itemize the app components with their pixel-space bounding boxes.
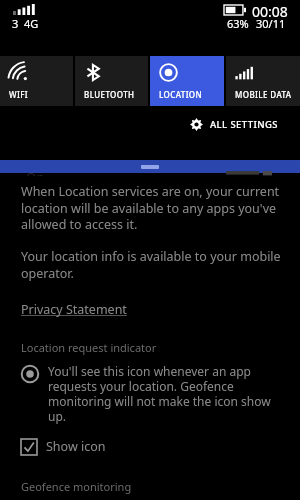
button[interactable]: Privacy Statement [21,301,127,318]
staticText: Show icon [46,438,106,455]
staticText: BLUETOOTH [84,89,135,100]
other: Location request indicator icon [21,365,39,383]
staticText: Geofence monitoring [21,479,132,494]
button[interactable]: WIFI [0,56,73,106]
button[interactable]: ALL SETTINGS [186,114,282,135]
staticText: ALL SETTINGS [210,118,278,131]
button[interactable]: Show icon [21,438,106,455]
staticText: 63% [227,16,249,31]
staticText: You'll see this icon whenever an app req… [48,363,284,424]
staticText: WIFI [9,89,29,100]
staticText: Your location info is available to your … [21,248,284,281]
staticText: MOBILE DATA [235,89,292,100]
staticText: When Location services are on, your curr… [21,183,284,232]
staticText: LOCATION [159,89,203,100]
button[interactable]: Location request indicator icon [21,363,284,424]
staticText: 00:08 [252,2,288,21]
button[interactable] [0,160,300,173]
staticText: 30/11 [256,16,286,31]
button[interactable]: MOBILE DATA [226,56,300,106]
staticText: Location request indicator [21,340,157,355]
button[interactable]: LOCATION [150,56,224,106]
staticText: Privacy Statement [21,301,127,318]
staticText: On [26,168,45,176]
staticText: 3 4G [12,16,39,31]
button[interactable]: BLUETOOTH [75,56,148,106]
